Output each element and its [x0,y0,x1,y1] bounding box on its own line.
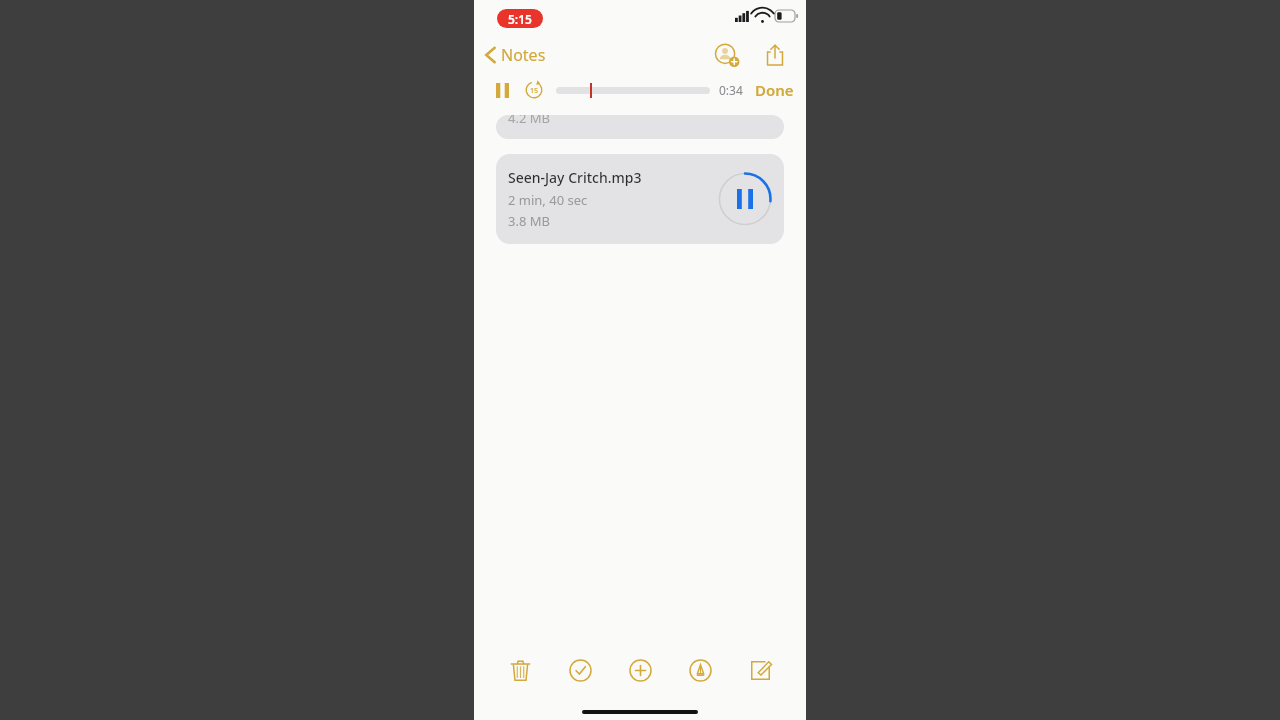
button[interactable]: Markup [670,648,730,692]
button[interactable]: Rewind 15 seconds [521,77,547,103]
staticText: 15 [530,86,539,96]
button[interactable]: Done [753,76,796,104]
button[interactable]: Add People [710,38,744,72]
staticText: 0:34 [719,82,743,98]
button[interactable]: Share [758,38,792,72]
staticText: Notes [501,44,546,66]
button[interactable]: 4.2 MB [496,115,784,139]
staticText: 4.2 MB [508,115,550,127]
staticText: 5:15 [508,11,532,27]
button[interactable]: Seen-Jay Critch.mp3 [496,154,784,244]
button[interactable]: Pause [490,78,514,102]
staticText: 2 min, 40 sec [508,191,588,209]
staticText: Done [755,80,794,100]
button[interactable]: Pause audio [718,172,772,226]
button[interactable]: Add [610,648,670,692]
button[interactable]: Checklist [550,648,610,692]
button[interactable]: Delete [490,648,550,692]
staticText: 3.8 MB [508,212,550,230]
staticText: Seen-Jay Critch.mp3 [508,168,642,187]
button[interactable]: Compose [730,648,790,692]
button[interactable]: Notes [482,40,549,70]
